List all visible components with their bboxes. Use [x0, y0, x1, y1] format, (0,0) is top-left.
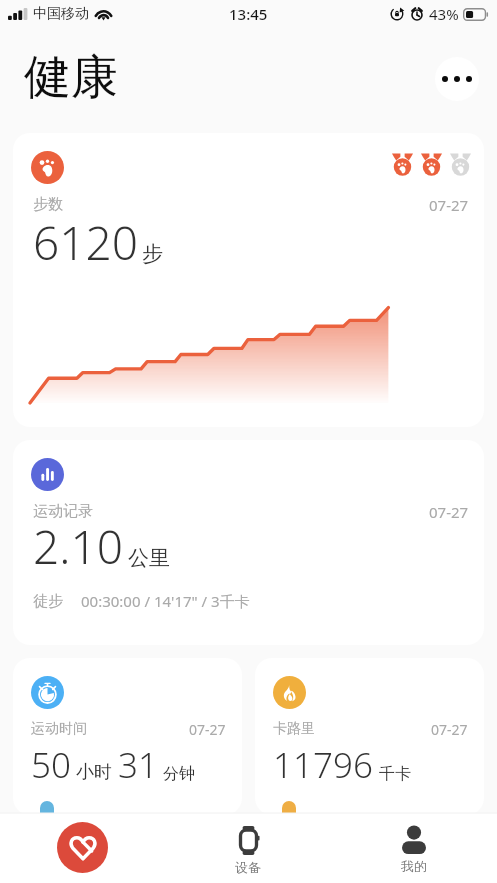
staticText: 公里 [128, 545, 170, 571]
button[interactable]: 运动记录 [13, 440, 484, 645]
button[interactable]: 卡路里 [255, 658, 484, 815]
staticText: 07-27 [429, 502, 469, 522]
button[interactable]: 健康 Health [0, 813, 165, 883]
button[interactable]: 运动时间 [13, 658, 242, 815]
staticText: 6120 [33, 211, 139, 274]
staticText: 07-27 [429, 195, 469, 215]
staticText: 中国移动 [33, 5, 89, 23]
staticText: 小时 [76, 761, 112, 784]
staticText: 运动记录 [33, 502, 93, 521]
staticText: 分钟 [163, 764, 195, 784]
button[interactable]: 设备 [165, 813, 331, 883]
button[interactable]: 我的 [331, 813, 497, 883]
staticText: 设备 [235, 859, 261, 875]
staticText: 卡路里 [273, 720, 315, 738]
staticText: 步数 [33, 195, 63, 214]
staticText: 千卡 [379, 764, 411, 784]
staticText: 健康 [24, 48, 118, 107]
staticText: 43% [429, 4, 459, 24]
staticText: 我的 [401, 858, 427, 874]
staticText: 13:45 [229, 4, 268, 24]
staticText: 07-27 [431, 720, 468, 739]
staticText: 11796 [273, 741, 373, 789]
staticText: 31 [118, 741, 158, 789]
staticText: 07-27 [189, 720, 226, 739]
staticText: 步 [142, 241, 163, 267]
staticText: 运动时间 [31, 720, 87, 738]
staticText: 50 [31, 741, 71, 789]
button[interactable]: More options [435, 57, 479, 101]
staticText: 00:30:00 / 14'17" / 3千卡 [81, 591, 250, 611]
staticText: 徒步 [33, 592, 63, 611]
staticText: 2.10 [33, 515, 124, 578]
button[interactable]: 步数 [13, 133, 484, 427]
